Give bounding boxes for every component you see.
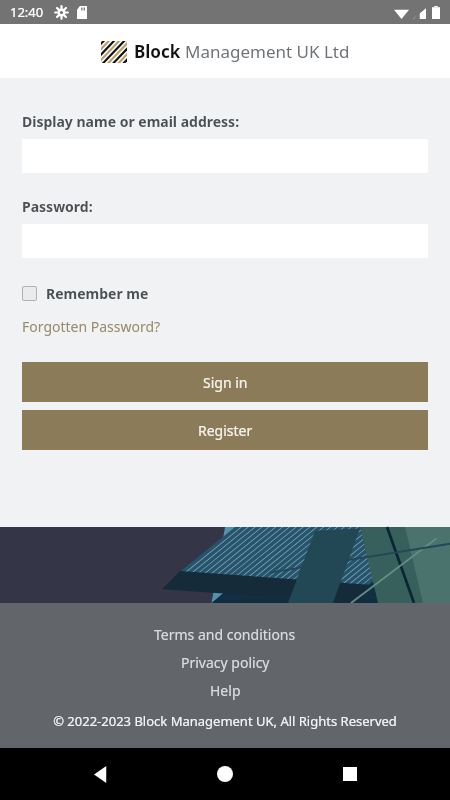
- staticText: © 2022-2023 Block Management UK, All Rig…: [53, 712, 397, 730]
- staticText: Display name or email address:: [22, 112, 240, 131]
- staticText: Password:: [22, 197, 93, 216]
- staticText: Block: [134, 40, 181, 63]
- button[interactable]: Recent apps: [326, 750, 374, 798]
- button[interactable]: Remember me: [22, 284, 149, 303]
- button[interactable]: Back: [77, 750, 125, 798]
- staticText: Management UK Ltd: [185, 40, 350, 63]
- staticText: Terms and conditions: [154, 625, 296, 644]
- staticText: 12:40: [10, 3, 44, 21]
- button[interactable]: Sign in: [22, 362, 428, 402]
- button[interactable]: Home: [201, 750, 249, 798]
- staticText: Sign in: [203, 373, 248, 392]
- button[interactable]: Register: [22, 410, 428, 450]
- staticText: Help: [210, 681, 241, 700]
- staticText: Remember me: [46, 284, 149, 303]
- button[interactable]: Terms and conditions: [154, 625, 296, 644]
- button[interactable]: Privacy policy: [181, 653, 270, 672]
- staticText: Privacy policy: [181, 653, 270, 672]
- button[interactable]: Forgotten Password?: [22, 317, 161, 336]
- staticText: Forgotten Password?: [22, 317, 161, 336]
- button[interactable]: Help: [210, 681, 241, 700]
- staticText: Register: [198, 421, 253, 440]
